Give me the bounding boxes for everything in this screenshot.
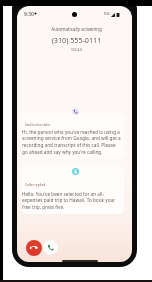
staticText: (310) 555-0111 [19,35,132,45]
staticText: Automatically screening [19,26,132,32]
button[interactable] [21,165,124,214]
staticText: Said to the caller [25,123,51,127]
button[interactable]: End call [26,240,42,256]
staticText: 5G [104,11,110,17]
staticText: Hi, the person who you've reached is usi… [22,129,121,156]
button[interactable]: Caller [72,168,79,175]
staticText: Caller replied [25,183,46,187]
staticText: Hello. You've been selected for an all-e… [22,191,121,211]
button[interactable]: Google Assistant said [72,108,79,115]
staticText: 00:24 [19,47,132,53]
button[interactable] [21,113,124,159]
button[interactable]: Answer call [43,240,58,255]
staticText: 9:30 [24,11,34,18]
